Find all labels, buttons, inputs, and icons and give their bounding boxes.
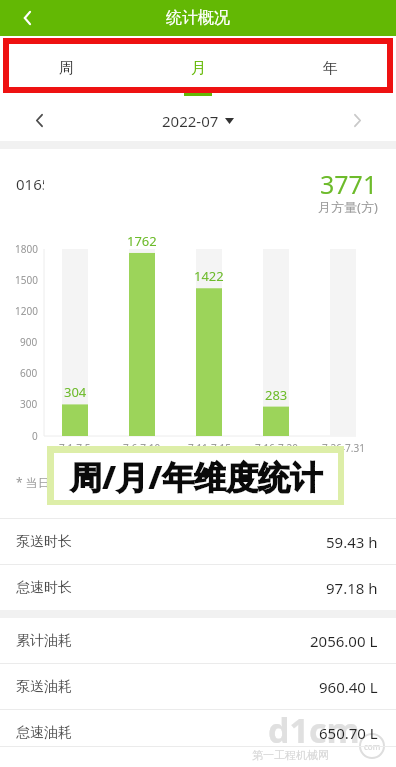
button[interactable] [12, 4, 42, 32]
staticText: 第一工程机械网 [252, 748, 329, 762]
button[interactable]: 2022-07 [162, 111, 234, 131]
staticText: 650.70 L [319, 723, 378, 743]
staticText: 304 [64, 383, 87, 399]
staticText: 泵送时长 [16, 533, 72, 551]
staticText: 7.26-7.31 [322, 441, 365, 455]
button[interactable]: 累计油耗 [0, 618, 396, 663]
staticText: 统计概况 [166, 8, 230, 28]
staticText: 97.18 h [326, 578, 378, 598]
staticText: 1422 [194, 267, 224, 283]
staticText: 960.40 L [319, 677, 378, 697]
staticText: 怠速油耗 [16, 724, 72, 742]
button[interactable]: 周 [0, 36, 132, 100]
staticText: 1800 [15, 242, 38, 256]
staticText: 周 [59, 59, 74, 78]
staticText: 300 [20, 397, 38, 411]
button[interactable]: 泵送油耗 [0, 664, 396, 709]
staticText: 1500 [15, 273, 38, 287]
staticText: 600 [20, 366, 38, 380]
staticText: 周/月/年维度统计 [70, 455, 323, 499]
staticText: 累计油耗 [16, 632, 72, 650]
staticText: 2022-07 [162, 111, 219, 131]
staticText: 7.1-7.5 [59, 441, 91, 455]
staticText: 2056.00 L [310, 631, 378, 651]
staticText: 283 [265, 386, 288, 402]
staticText: 泵送油耗 [16, 678, 72, 696]
button[interactable]: 年 [264, 36, 396, 100]
staticText: 0 [32, 429, 38, 443]
button[interactable]: 怠速油耗 [0, 712, 396, 754]
button[interactable]: 月 [132, 36, 264, 100]
staticText: 1762 [127, 232, 157, 248]
staticText: 月方量(方) [318, 198, 378, 216]
button[interactable] [342, 106, 372, 134]
staticText: 900 [20, 335, 38, 349]
staticText: 月 [191, 59, 206, 78]
staticText: 1200 [15, 304, 38, 318]
staticText: com [364, 741, 381, 752]
button[interactable]: 怠速时长 [0, 565, 396, 610]
staticText: 怠速时长 [16, 579, 72, 597]
button[interactable] [24, 106, 54, 134]
staticText: 7.6-7.10 [123, 441, 161, 455]
staticText: 7.11-7.15 [188, 441, 231, 455]
staticText: 0165 [16, 174, 44, 193]
button[interactable]: 泵送时长 [0, 519, 396, 564]
staticText: 7.16-7.20 [255, 441, 298, 455]
staticText: 年 [323, 59, 338, 78]
staticText: 3771 [320, 167, 378, 201]
staticText: * 当日 [16, 474, 50, 490]
staticText: d1cm [268, 707, 360, 753]
staticText: 59.43 h [326, 532, 378, 552]
